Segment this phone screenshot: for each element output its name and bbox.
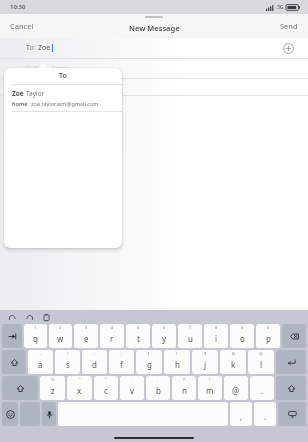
staticText: p — [266, 333, 271, 344]
button[interactable]: . — [250, 376, 274, 400]
staticText: : — [94, 351, 96, 356]
staticText: c — [104, 385, 108, 396]
button[interactable]: Dictation — [42, 402, 56, 426]
staticText: y — [162, 333, 167, 344]
staticText: . — [261, 385, 264, 396]
staticText: z — [51, 385, 55, 396]
staticText: - — [40, 351, 42, 356]
button[interactable]: Subject: — [0, 79, 308, 95]
button[interactable]: 5 — [126, 324, 150, 348]
button[interactable]: . — [254, 402, 276, 426]
staticText: Zoe — [12, 89, 24, 98]
staticText: 8 — [215, 325, 218, 330]
staticText: . — [131, 377, 133, 382]
button[interactable]: ; — [109, 350, 134, 374]
staticText: t — [137, 333, 140, 344]
button[interactable]: 9 — [230, 324, 254, 348]
staticText: ” — [105, 377, 107, 382]
button[interactable]: @ — [248, 350, 274, 374]
button[interactable]: 7 — [178, 324, 202, 348]
staticText: Taylor — [26, 89, 45, 98]
button[interactable]: 6 — [152, 324, 176, 348]
button[interactable]: 1 — [24, 324, 47, 348]
button[interactable]: 8 — [204, 324, 228, 348]
staticText: i — [215, 333, 218, 344]
button[interactable]: Cancel — [0, 17, 44, 35]
button[interactable]: , — [230, 402, 252, 426]
staticText: g — [147, 359, 152, 370]
staticText: Subject: — [26, 82, 52, 92]
staticText: New Message — [129, 23, 180, 33]
staticText: . — [264, 411, 267, 422]
staticText: Send — [280, 21, 298, 31]
button[interactable]: Shift — [2, 376, 38, 400]
button[interactable]: : — [82, 350, 107, 374]
staticText: e — [84, 333, 89, 344]
button[interactable]: ” — [94, 376, 118, 400]
staticText: ( — [148, 351, 150, 356]
staticText: 5 — [137, 325, 140, 330]
button[interactable]: Tab — [2, 324, 22, 348]
button[interactable]: “ — [67, 376, 92, 400]
staticText: ) — [176, 351, 178, 356]
button[interactable]: Send — [270, 17, 308, 35]
button[interactable]: 2 — [49, 324, 72, 348]
staticText: home — [12, 100, 28, 107]
staticText: x — [77, 385, 82, 396]
button[interactable]: / — [55, 350, 80, 374]
staticText: h — [175, 359, 180, 370]
button[interactable]: - — [28, 350, 53, 374]
button[interactable]: ( — [136, 350, 162, 374]
staticText: $ — [204, 351, 207, 356]
button[interactable]: To: — [0, 38, 308, 58]
button[interactable]: . — [120, 376, 144, 400]
staticText: f — [120, 359, 123, 370]
staticText: 2 — [59, 325, 62, 330]
staticText: 3 — [85, 325, 88, 330]
button[interactable]: Paste — [42, 313, 51, 322]
button[interactable]: ! — [198, 376, 222, 400]
button[interactable]: Emoji — [2, 402, 18, 426]
button[interactable]: Cc/Bcc, From: — [0, 59, 308, 78]
staticText: q — [33, 333, 38, 344]
staticText: , — [240, 411, 243, 422]
staticText: @ — [259, 351, 263, 356]
button[interactable]: $ — [192, 350, 218, 374]
staticText: @ — [232, 385, 240, 396]
staticText: & — [232, 351, 235, 356]
button[interactable]: 4 — [100, 324, 124, 348]
button[interactable]: ? — [172, 376, 196, 400]
staticText: r — [110, 333, 114, 344]
staticText: / — [67, 351, 69, 356]
button[interactable]: Caps lock — [2, 350, 26, 374]
button[interactable]: Return — [276, 350, 306, 374]
button[interactable]: Add contact — [283, 43, 294, 54]
button[interactable]: Shift — [276, 376, 306, 400]
button[interactable]: Redo — [25, 313, 34, 322]
staticText: 7 — [189, 325, 192, 330]
staticText: k — [231, 359, 236, 370]
button[interactable]: 3 — [74, 324, 98, 348]
staticText: d — [92, 359, 97, 370]
staticText: 3G — [277, 4, 284, 11]
button[interactable]: Zoe — [4, 85, 122, 111]
staticText: 4 — [111, 325, 114, 330]
button[interactable]: Backspace — [282, 324, 306, 348]
staticText: s — [66, 359, 70, 370]
staticText: b — [156, 385, 161, 396]
button[interactable]: 0 — [256, 324, 280, 348]
button[interactable]: Hide keyboard — [278, 402, 306, 426]
staticText: ? — [183, 377, 185, 382]
button[interactable]: % — [40, 376, 65, 400]
staticText: v — [130, 385, 135, 396]
button[interactable]: , — [146, 376, 170, 400]
staticText: n — [182, 385, 187, 396]
staticText: ! — [209, 377, 211, 382]
button[interactable]: @ — [224, 376, 248, 400]
button[interactable]: Undo — [8, 313, 17, 322]
button[interactable]: & — [220, 350, 246, 374]
button[interactable]: ) — [164, 350, 190, 374]
staticText: 0 — [267, 325, 270, 330]
